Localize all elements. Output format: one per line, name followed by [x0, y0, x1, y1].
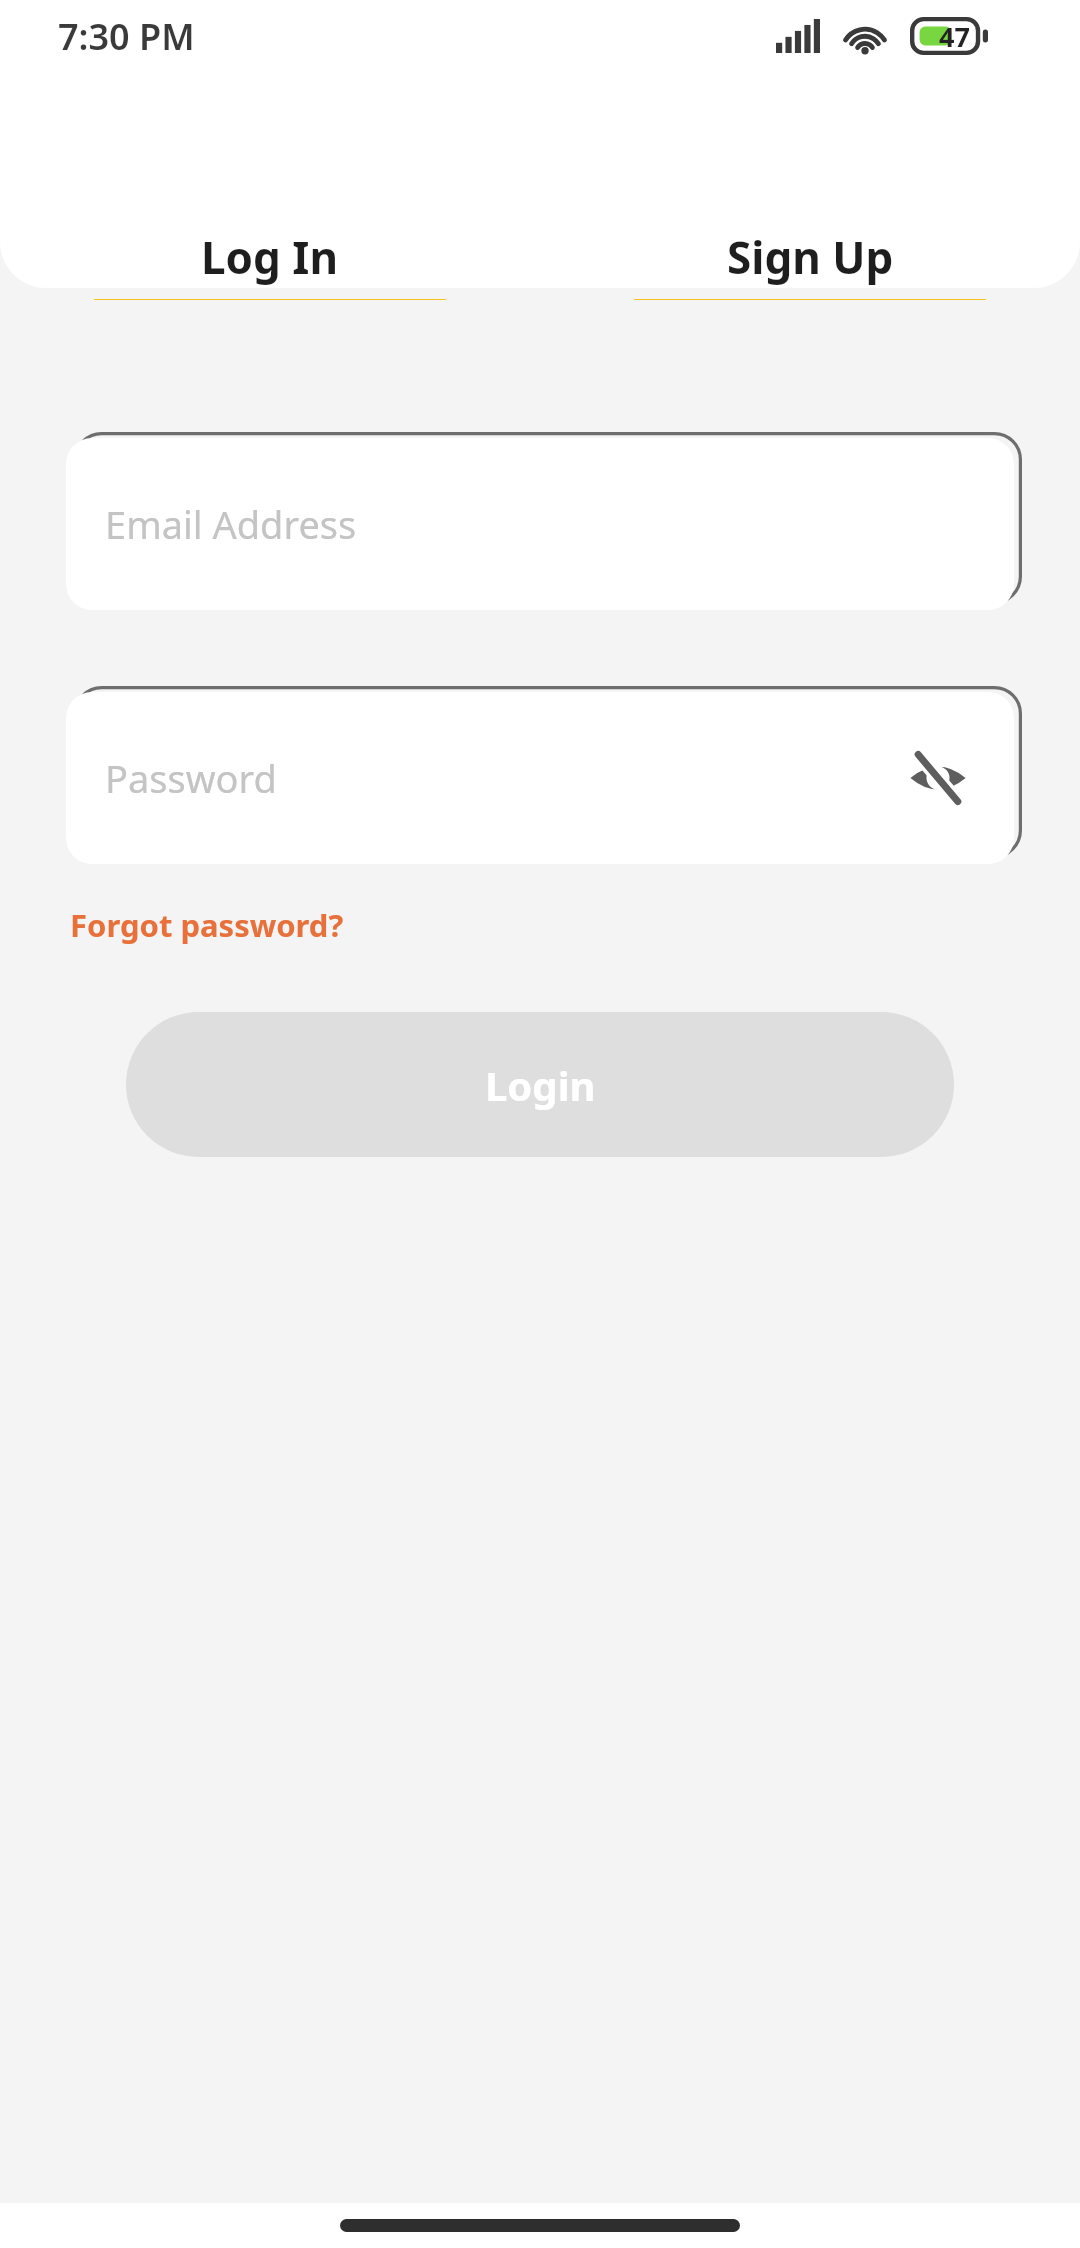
- staticText: Password: [105, 752, 277, 804]
- staticText: 7:30 PM: [58, 12, 195, 61]
- button[interactable]: Forgot password?: [68, 898, 346, 952]
- button[interactable]: Sign Up: [540, 227, 1080, 300]
- staticText: Sign Up: [727, 227, 894, 287]
- button[interactable]: Password: [66, 692, 1014, 864]
- staticText: Email Address: [105, 498, 357, 550]
- button[interactable]: Show password: [898, 743, 978, 813]
- staticText: 47: [939, 18, 970, 55]
- staticText: Log In: [201, 227, 339, 287]
- staticText: Login: [485, 1058, 596, 1112]
- staticText: Forgot password?: [70, 904, 344, 946]
- button[interactable]: Email Address: [66, 438, 1014, 610]
- button[interactable]: Login: [126, 1012, 954, 1157]
- button[interactable]: Log In: [0, 227, 540, 300]
